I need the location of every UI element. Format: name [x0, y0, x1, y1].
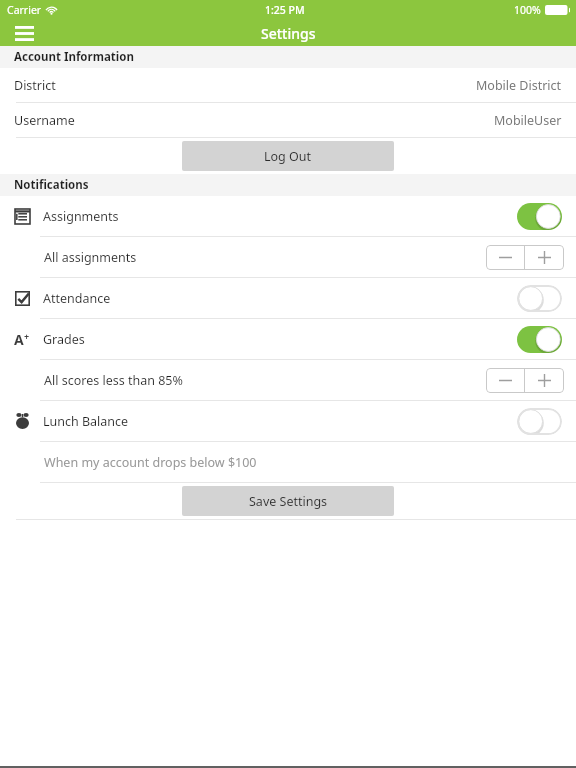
button[interactable]: A	[0, 319, 576, 359]
button[interactable]: Assignments	[0, 196, 576, 236]
staticText: MobileUser	[494, 112, 562, 129]
button[interactable]: Lunch Balance	[0, 401, 576, 441]
button[interactable]: Increase	[525, 368, 564, 393]
staticText: All scores less than 85%	[44, 372, 183, 389]
staticText: A	[14, 330, 24, 349]
staticText: When my account drops below $100	[44, 454, 257, 471]
staticText: 100%	[514, 3, 541, 17]
staticText: Log Out	[264, 148, 312, 165]
button[interactable]: Menu	[8, 20, 40, 46]
staticText: Settings	[261, 24, 316, 43]
staticText: Notifications	[14, 177, 89, 193]
button[interactable]: Decrease	[486, 368, 524, 393]
button[interactable]: District	[0, 68, 576, 102]
staticText: All assignments	[44, 249, 137, 266]
staticText: +	[24, 330, 30, 342]
staticText: Lunch Balance	[43, 413, 129, 430]
button[interactable]: Save Settings	[182, 486, 394, 516]
button[interactable]: Toggle	[517, 285, 562, 312]
staticText: Grades	[43, 331, 85, 348]
button[interactable]: Toggle	[517, 203, 562, 230]
staticText: 1:25 PM	[265, 3, 305, 17]
button[interactable]: Toggle	[517, 326, 562, 353]
button[interactable]: Attendance	[0, 278, 576, 318]
button[interactable]: Toggle	[517, 408, 562, 435]
button[interactable]: When my account drops below $100	[0, 442, 576, 482]
staticText: District	[14, 77, 56, 94]
button[interactable]: Decrease	[486, 245, 524, 270]
staticText: Save Settings	[249, 493, 328, 510]
button[interactable]: Log Out	[182, 141, 394, 171]
staticText: Attendance	[43, 290, 111, 307]
staticText: Username	[14, 112, 75, 129]
staticText: Account Information	[14, 49, 134, 65]
button[interactable]: Username	[0, 103, 576, 137]
button[interactable]: Increase	[525, 245, 564, 270]
staticText: Carrier	[7, 3, 42, 17]
staticText: Mobile District	[476, 77, 562, 94]
staticText: Assignments	[43, 208, 119, 225]
